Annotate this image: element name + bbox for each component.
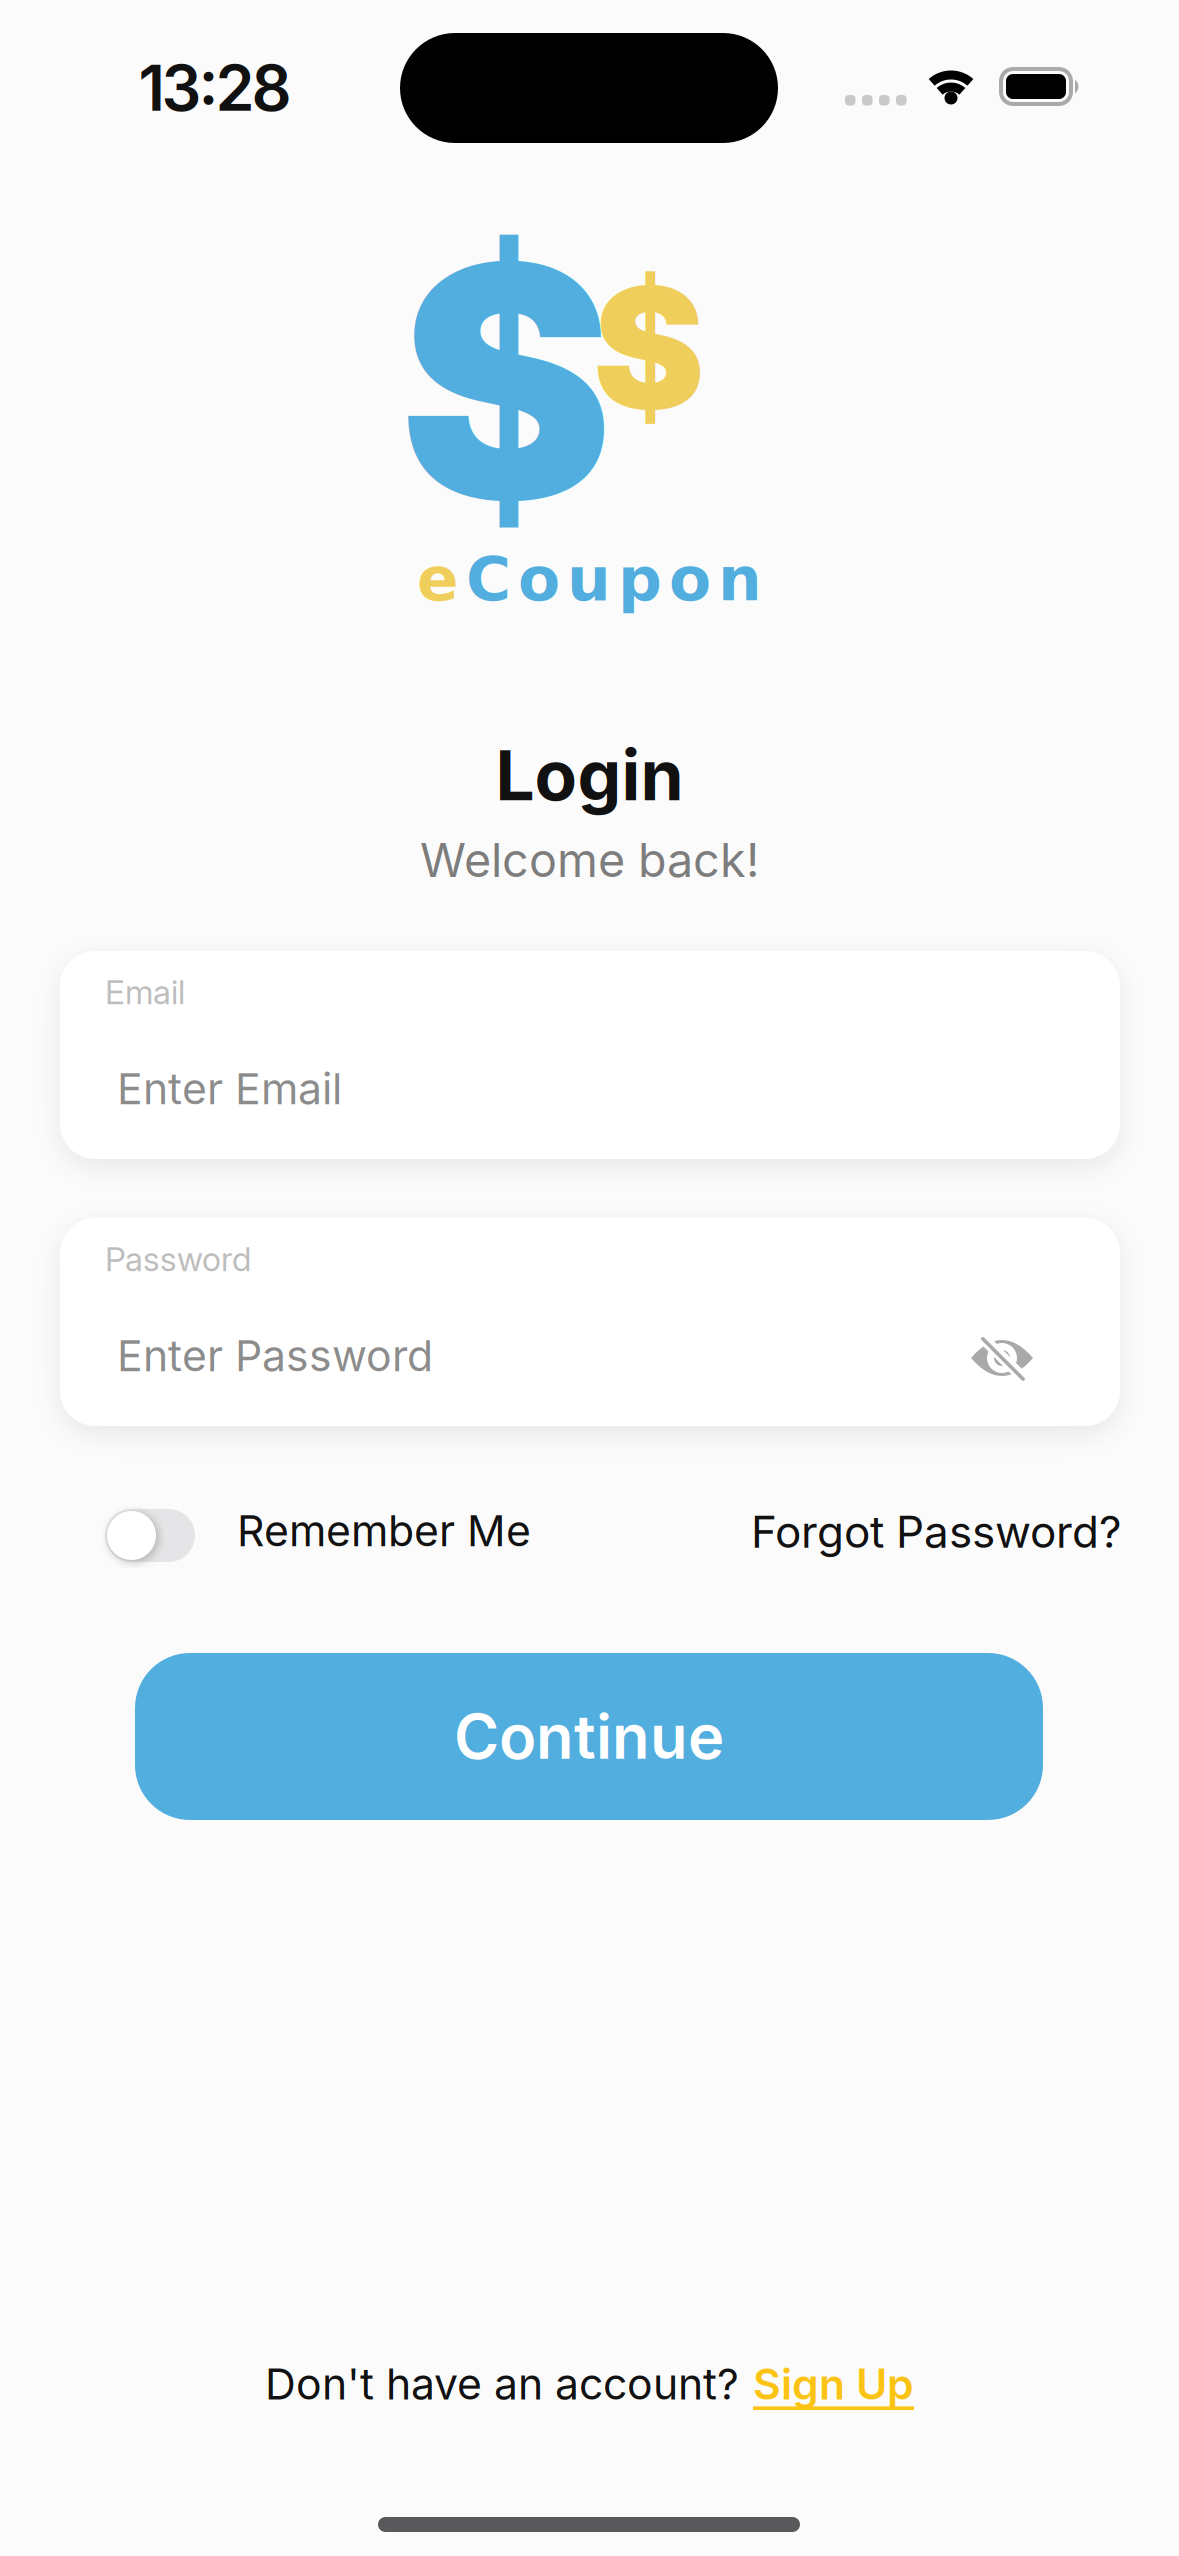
staticText: o — [518, 543, 560, 615]
staticText: Enter Email — [117, 1063, 342, 1115]
button[interactable]: Sign Up — [753, 2358, 914, 2410]
staticText: o — [669, 543, 711, 615]
staticText: C — [466, 543, 511, 615]
staticText: Continue — [454, 1699, 724, 1774]
staticText: e — [417, 543, 459, 615]
staticText: Welcome back! — [420, 832, 759, 888]
staticText: Forgot Password? — [751, 1505, 1121, 1558]
button[interactable]: Email — [60, 951, 1120, 1159]
button[interactable]: Continue — [135, 1653, 1043, 1820]
staticText: Sign Up — [753, 2358, 914, 2410]
staticText: Password — [105, 1239, 251, 1279]
staticText: Email — [105, 972, 185, 1012]
staticText: Remember Me — [237, 1505, 531, 1557]
staticText: p — [618, 543, 662, 615]
button[interactable]: Forgot Password? — [751, 1505, 1121, 1558]
staticText: u — [567, 543, 611, 615]
button[interactable]: Password — [60, 1218, 1120, 1426]
staticText: Enter Password — [117, 1330, 433, 1382]
staticText: n — [718, 543, 762, 615]
button[interactable]: Remember Me — [105, 1509, 195, 1562]
staticText: Don't have an account? — [265, 2358, 739, 2410]
button[interactable]: Show password — [971, 1328, 1035, 1390]
staticText: $ — [399, 187, 613, 575]
staticText: 13:28 — [138, 50, 291, 126]
staticText: $ — [593, 246, 705, 450]
staticText: Login — [495, 733, 683, 817]
